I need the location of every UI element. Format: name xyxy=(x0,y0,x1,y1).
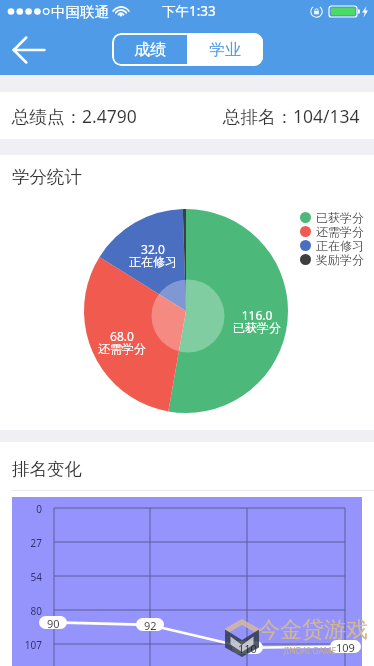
staticText: 奖励学分 xyxy=(316,252,364,266)
button[interactable] xyxy=(232,641,263,654)
staticText: 学业 xyxy=(209,40,241,60)
staticText: 中国联通 xyxy=(51,3,109,21)
staticText: 54 xyxy=(0,570,42,584)
staticText: 成绩 xyxy=(134,40,166,60)
staticText: 学分统计 xyxy=(12,166,82,188)
staticText: 80 xyxy=(0,604,42,618)
button[interactable]: 学业 xyxy=(187,33,263,66)
staticText: 已获学分 xyxy=(316,210,364,224)
button[interactable] xyxy=(330,640,361,653)
button[interactable] xyxy=(136,618,164,631)
staticText: 还需学分 xyxy=(316,224,364,238)
staticText: 68.0 xyxy=(82,328,162,344)
staticText: 32.0 xyxy=(113,241,193,257)
staticText: 92 xyxy=(144,618,157,631)
staticText: 总排名：104/134 xyxy=(223,104,360,128)
staticText: 总绩点：2.4790 xyxy=(12,104,137,128)
button[interactable]: 成绩 xyxy=(112,33,187,66)
staticText: 下午1:33 xyxy=(162,2,216,20)
staticText: 116.0 xyxy=(217,307,297,323)
staticText: 0 xyxy=(0,502,42,516)
staticText: 正在修习 xyxy=(113,254,193,269)
staticText: 90 xyxy=(47,616,60,629)
staticText: 还需学分 xyxy=(82,341,162,356)
staticText: 排名变化 xyxy=(12,458,82,480)
button[interactable]: Back xyxy=(4,30,54,70)
staticText: 27 xyxy=(0,536,42,550)
staticText: 正在修习 xyxy=(316,238,364,252)
staticText: JINDAI GAME xyxy=(284,645,337,657)
button[interactable] xyxy=(39,616,67,629)
staticText: 110 xyxy=(238,641,257,654)
staticText: 109 xyxy=(336,640,355,653)
staticText: 107 xyxy=(0,638,42,652)
staticText: 已获学分 xyxy=(217,320,297,335)
staticText: 今金贷游戏 xyxy=(258,616,368,644)
